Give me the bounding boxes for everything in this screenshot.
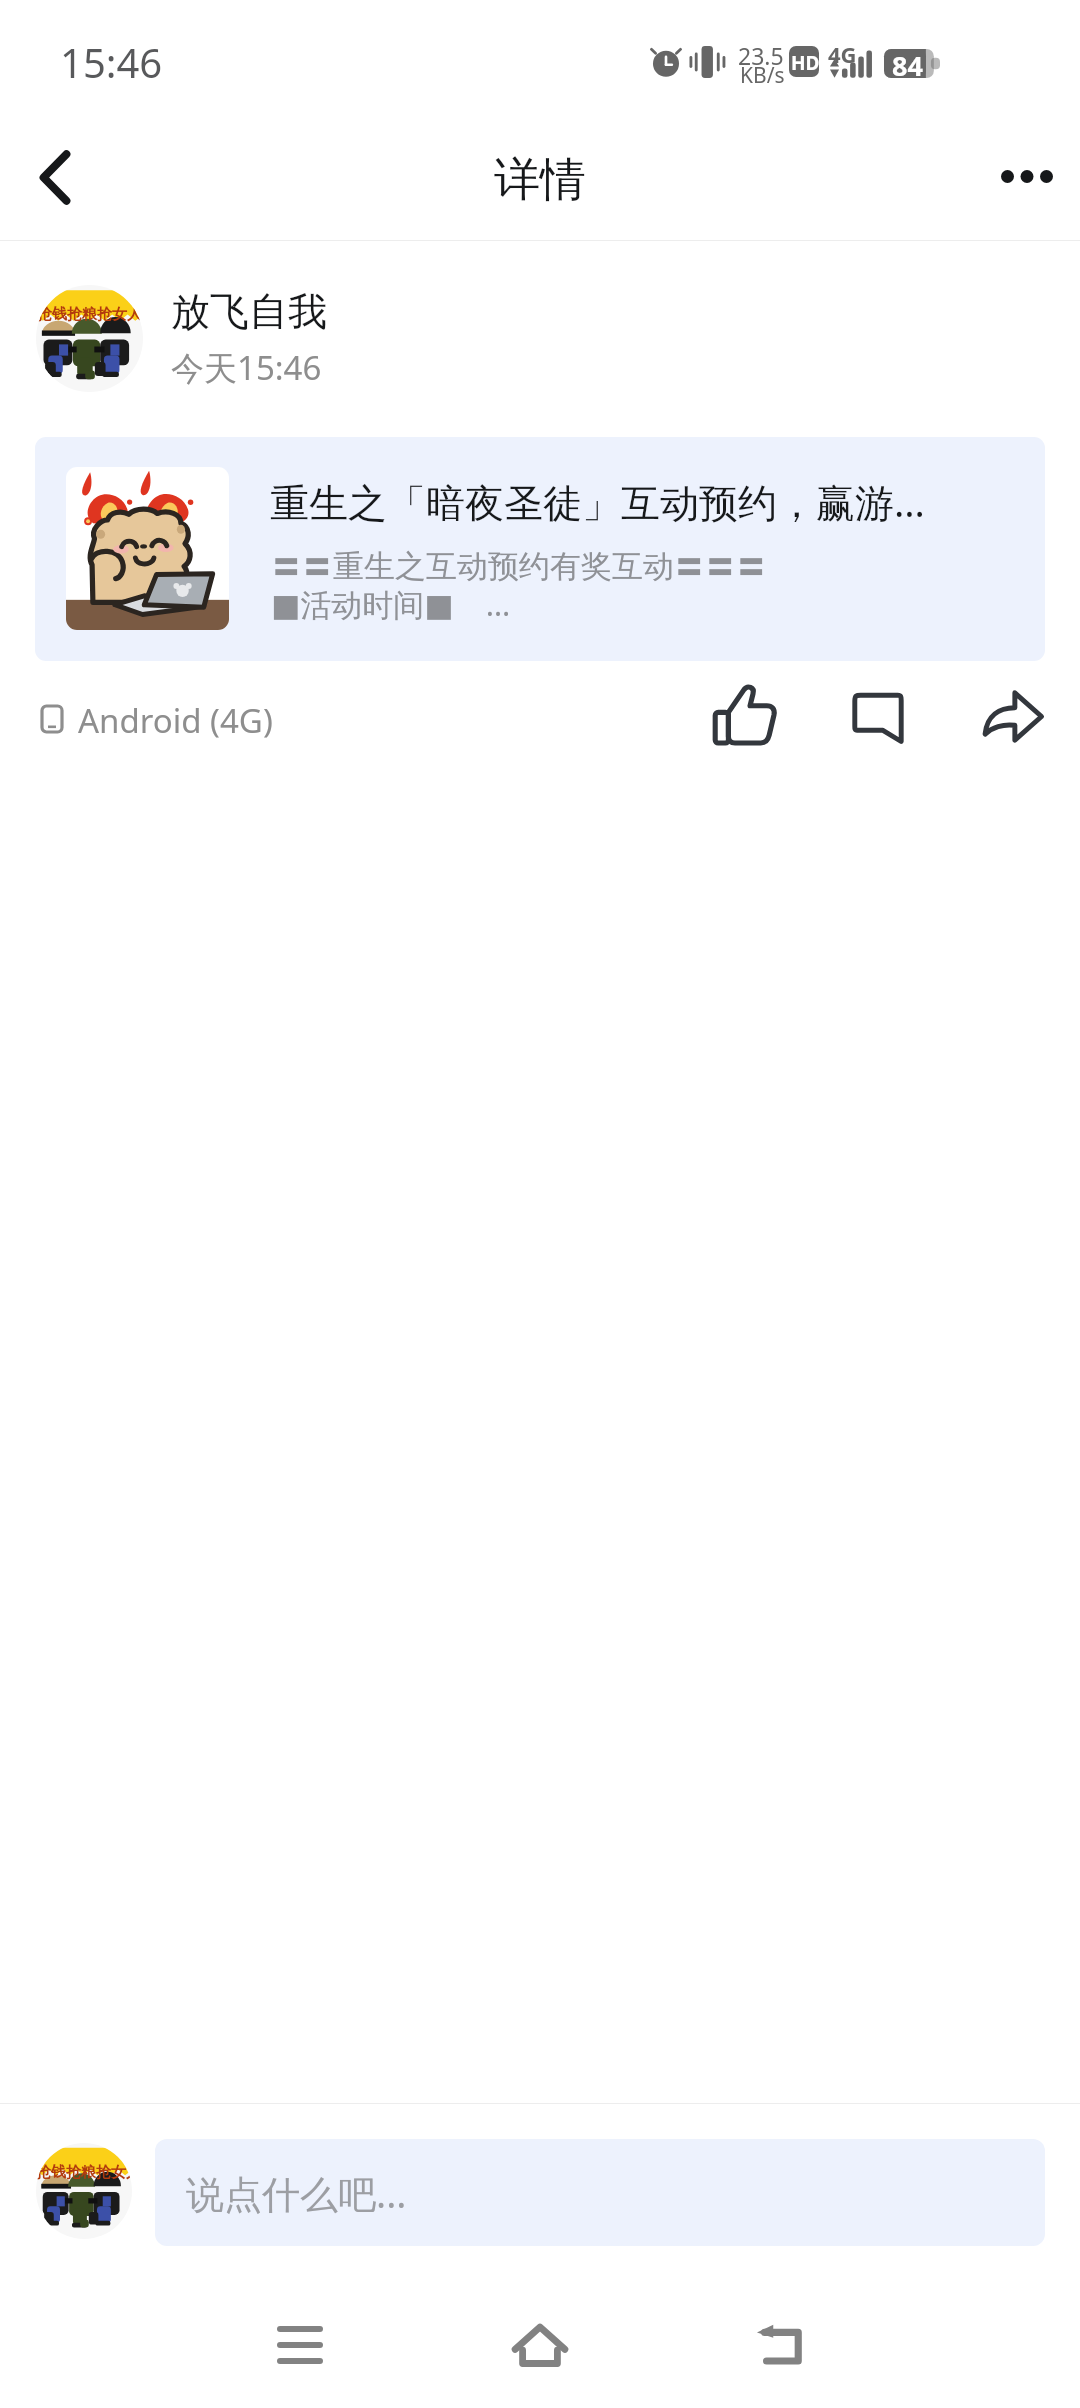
button[interactable]: Comment [824,662,932,770]
button[interactable]: 说点什么吧... [155,2139,1045,2246]
button[interactable]: Back [0,120,110,240]
staticText: 抢钱抢粮抢女人 [36,2163,132,2182]
staticText: 15:46 [60,35,163,89]
staticText: 放飞自我 [171,287,327,336]
staticText: 重生之「暗夜圣徒」互动预约，赢游… [270,475,925,528]
staticText: 今天15:46 [171,345,322,390]
staticText: 84 [892,47,923,76]
button[interactable]: 放飞自我 [171,283,491,377]
button[interactable]: More options [974,120,1080,240]
button[interactable]: 放飞自我 avatar [36,285,143,392]
staticText: 抢钱抢粮抢女人 [37,305,142,324]
button[interactable]: Share [959,662,1067,770]
staticText: 23.5 [738,40,784,71]
staticText: KB/s [740,61,785,90]
staticText: 详情 [494,151,586,209]
button[interactable]: 重生之「暗夜圣徒」互动预约，赢游… [35,437,1045,661]
button[interactable]: Home [460,2285,620,2405]
staticText: 说点什么吧... [186,2167,407,2219]
staticText: Android (4G) [78,698,273,743]
button[interactable]: Like [690,662,798,770]
staticText: HD [791,50,820,76]
button[interactable]: Recent apps [220,2285,380,2405]
button[interactable]: Back [700,2285,860,2405]
staticText: 4G [828,39,857,69]
button[interactable]: My avatar [36,2143,132,2239]
staticText: 〓〓重生之互动预约有奖互动〓〓〓 ■活动时间■ … [271,547,768,625]
